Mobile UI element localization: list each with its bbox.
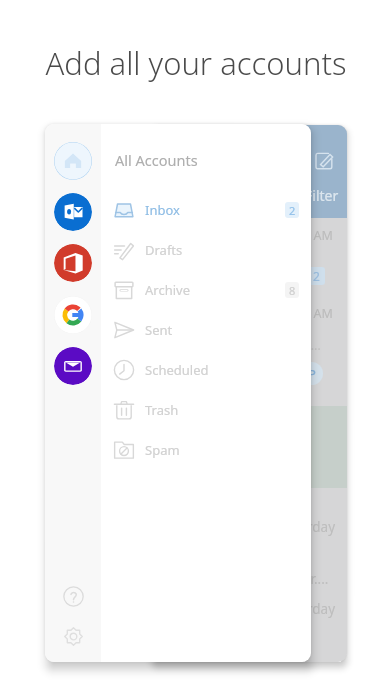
button[interactable]: Yahoo account — [54, 347, 92, 385]
staticText: Spam — [145, 441, 180, 459]
staticText: rday — [307, 600, 336, 618]
button[interactable]: Scheduled — [101, 350, 311, 390]
staticText: rday — [307, 518, 336, 536]
staticText: P — [308, 365, 316, 383]
staticText: Archive — [145, 281, 190, 299]
button[interactable]: Trash — [101, 390, 311, 430]
button[interactable]: Drafts — [101, 230, 311, 270]
staticText: Filter — [305, 186, 339, 205]
button[interactable]: All accounts — [54, 142, 92, 180]
button[interactable]: Settings — [51, 614, 95, 658]
staticText: 7 AM — [303, 305, 333, 322]
button[interactable]: Spam — [101, 430, 311, 470]
staticText: Trash — [145, 401, 179, 419]
button[interactable]: Inbox — [101, 190, 311, 230]
staticText: 2 — [289, 203, 296, 218]
button[interactable]: Sent — [101, 310, 311, 350]
staticText: 0 AM — [303, 227, 333, 244]
staticText: Sent — [145, 321, 173, 339]
staticText: Add all your accounts — [45, 42, 347, 84]
button[interactable]: Office account — [54, 244, 92, 282]
staticText: 2 — [313, 268, 320, 284]
button[interactable]: Google account — [54, 296, 92, 334]
staticText: 8 — [289, 283, 296, 298]
staticText: Inbox — [145, 201, 180, 219]
staticText: Scheduled — [145, 361, 209, 379]
staticText: ir.... — [307, 570, 329, 588]
button[interactable]: Outlook account — [54, 193, 92, 231]
staticText: All Accounts — [115, 150, 198, 170]
staticText: Drafts — [145, 241, 183, 259]
staticText: n... — [303, 337, 321, 354]
button[interactable]: Help — [51, 574, 95, 618]
button[interactable]: Archive — [101, 270, 311, 310]
